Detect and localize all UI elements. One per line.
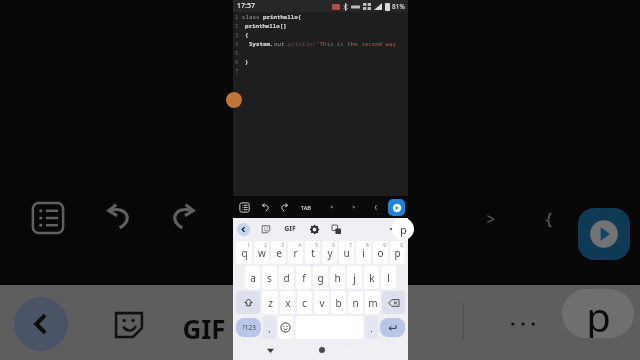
staticText: w bbox=[258, 246, 266, 260]
button[interactable]: , bbox=[263, 316, 276, 339]
button[interactable]: Translate bbox=[330, 223, 342, 235]
staticText: d bbox=[283, 271, 290, 285]
button[interactable]: ?123 bbox=[236, 318, 261, 337]
button[interactable]: . bbox=[365, 316, 378, 339]
button[interactable]: m bbox=[365, 291, 380, 314]
staticText: { bbox=[374, 203, 378, 211]
staticText: 9 bbox=[383, 242, 386, 248]
button[interactable]: d bbox=[279, 266, 294, 289]
staticText: GIF bbox=[182, 311, 226, 346]
staticText: ?123 bbox=[242, 323, 256, 332]
button[interactable]: Run bbox=[388, 199, 405, 216]
staticText: t bbox=[311, 246, 315, 260]
button[interactable]: l bbox=[381, 266, 396, 289]
staticText: l bbox=[387, 271, 390, 285]
button[interactable]: s bbox=[262, 266, 277, 289]
button[interactable]: Home bbox=[315, 343, 329, 357]
staticText: p bbox=[400, 222, 407, 237]
button[interactable]: File list bbox=[238, 201, 251, 214]
staticText: TAB bbox=[301, 204, 311, 211]
staticText: o bbox=[377, 246, 384, 260]
button[interactable]: Enter bbox=[380, 318, 405, 337]
button[interactable]: x bbox=[280, 291, 295, 314]
button[interactable]: > bbox=[349, 203, 359, 211]
staticText: { bbox=[544, 208, 554, 230]
button[interactable]: a bbox=[245, 266, 260, 289]
staticText: 3 bbox=[235, 31, 239, 38]
staticText: . bbox=[370, 322, 373, 334]
staticText: > bbox=[352, 203, 356, 211]
button[interactable]: Shift bbox=[236, 291, 260, 314]
staticText: s bbox=[267, 271, 272, 285]
staticText: 4 bbox=[298, 242, 301, 248]
staticText: p bbox=[586, 289, 611, 338]
button[interactable]: k bbox=[364, 266, 379, 289]
staticText: 2 bbox=[264, 242, 267, 248]
staticText: g bbox=[317, 271, 324, 285]
staticText: x bbox=[285, 296, 291, 310]
staticText: > bbox=[486, 208, 496, 230]
staticText: f bbox=[302, 271, 306, 285]
button[interactable]: i bbox=[356, 241, 371, 264]
button[interactable]: { bbox=[371, 203, 381, 211]
button[interactable]: Stickers bbox=[260, 223, 272, 235]
staticText: , bbox=[268, 322, 271, 334]
staticText: j bbox=[353, 271, 356, 285]
button[interactable]: o bbox=[373, 241, 388, 264]
button[interactable]: Redo bbox=[278, 201, 291, 214]
button[interactable]: Back bbox=[237, 223, 250, 236]
staticText: printhello{ bbox=[263, 13, 302, 21]
staticText: b bbox=[335, 296, 342, 310]
button[interactable]: g bbox=[313, 266, 328, 289]
button[interactable]: j bbox=[347, 266, 362, 289]
button[interactable]: n bbox=[348, 291, 363, 314]
button[interactable]: p bbox=[390, 241, 405, 264]
staticText: a bbox=[250, 271, 256, 285]
button[interactable]: y bbox=[322, 241, 337, 264]
staticText: GIF bbox=[284, 224, 296, 234]
staticText: println( bbox=[288, 40, 316, 48]
button[interactable]: c bbox=[297, 291, 312, 314]
staticText: e bbox=[276, 246, 282, 260]
button[interactable]: Backspace bbox=[382, 291, 405, 314]
staticText: n bbox=[352, 296, 359, 310]
button[interactable]: GIF bbox=[282, 224, 298, 234]
staticText: 81% bbox=[392, 2, 405, 11]
button[interactable]: f bbox=[296, 266, 311, 289]
staticText: r bbox=[293, 246, 298, 260]
button[interactable]: TAB bbox=[299, 204, 313, 211]
staticText: 1 bbox=[247, 242, 250, 248]
button[interactable]: p bbox=[392, 218, 414, 240]
staticText: m bbox=[368, 296, 378, 310]
button[interactable]: h bbox=[330, 266, 345, 289]
button[interactable]: v bbox=[314, 291, 329, 314]
button[interactable]: Hide keyboard bbox=[263, 343, 277, 357]
button[interactable]: w bbox=[254, 241, 269, 264]
staticText: 7 bbox=[235, 67, 239, 74]
button[interactable]: Undo bbox=[259, 201, 272, 214]
staticText: 6 bbox=[235, 58, 239, 65]
staticText: q bbox=[241, 246, 248, 260]
button[interactable]: z bbox=[262, 291, 278, 314]
staticText: k bbox=[369, 271, 375, 285]
button[interactable]: q bbox=[236, 241, 252, 264]
staticText: i bbox=[362, 246, 365, 260]
button[interactable]: t bbox=[305, 241, 320, 264]
button[interactable]: More options bbox=[388, 223, 400, 235]
staticText: class bbox=[242, 13, 263, 21]
button[interactable]: Emoji bbox=[278, 316, 293, 339]
staticText: 'This is the second way toh print h bbox=[316, 40, 408, 48]
staticText: 5 bbox=[315, 242, 318, 248]
button[interactable]: b bbox=[331, 291, 346, 314]
staticText: 1 bbox=[235, 13, 239, 20]
staticText: u bbox=[343, 246, 350, 260]
button[interactable]: < bbox=[327, 203, 337, 211]
staticText: System. bbox=[249, 40, 274, 48]
button[interactable]: u bbox=[339, 241, 354, 264]
button[interactable]: e bbox=[271, 241, 286, 264]
button[interactable]: r bbox=[288, 241, 303, 264]
staticText: y bbox=[327, 246, 333, 260]
button[interactable]: Settings bbox=[308, 223, 320, 235]
